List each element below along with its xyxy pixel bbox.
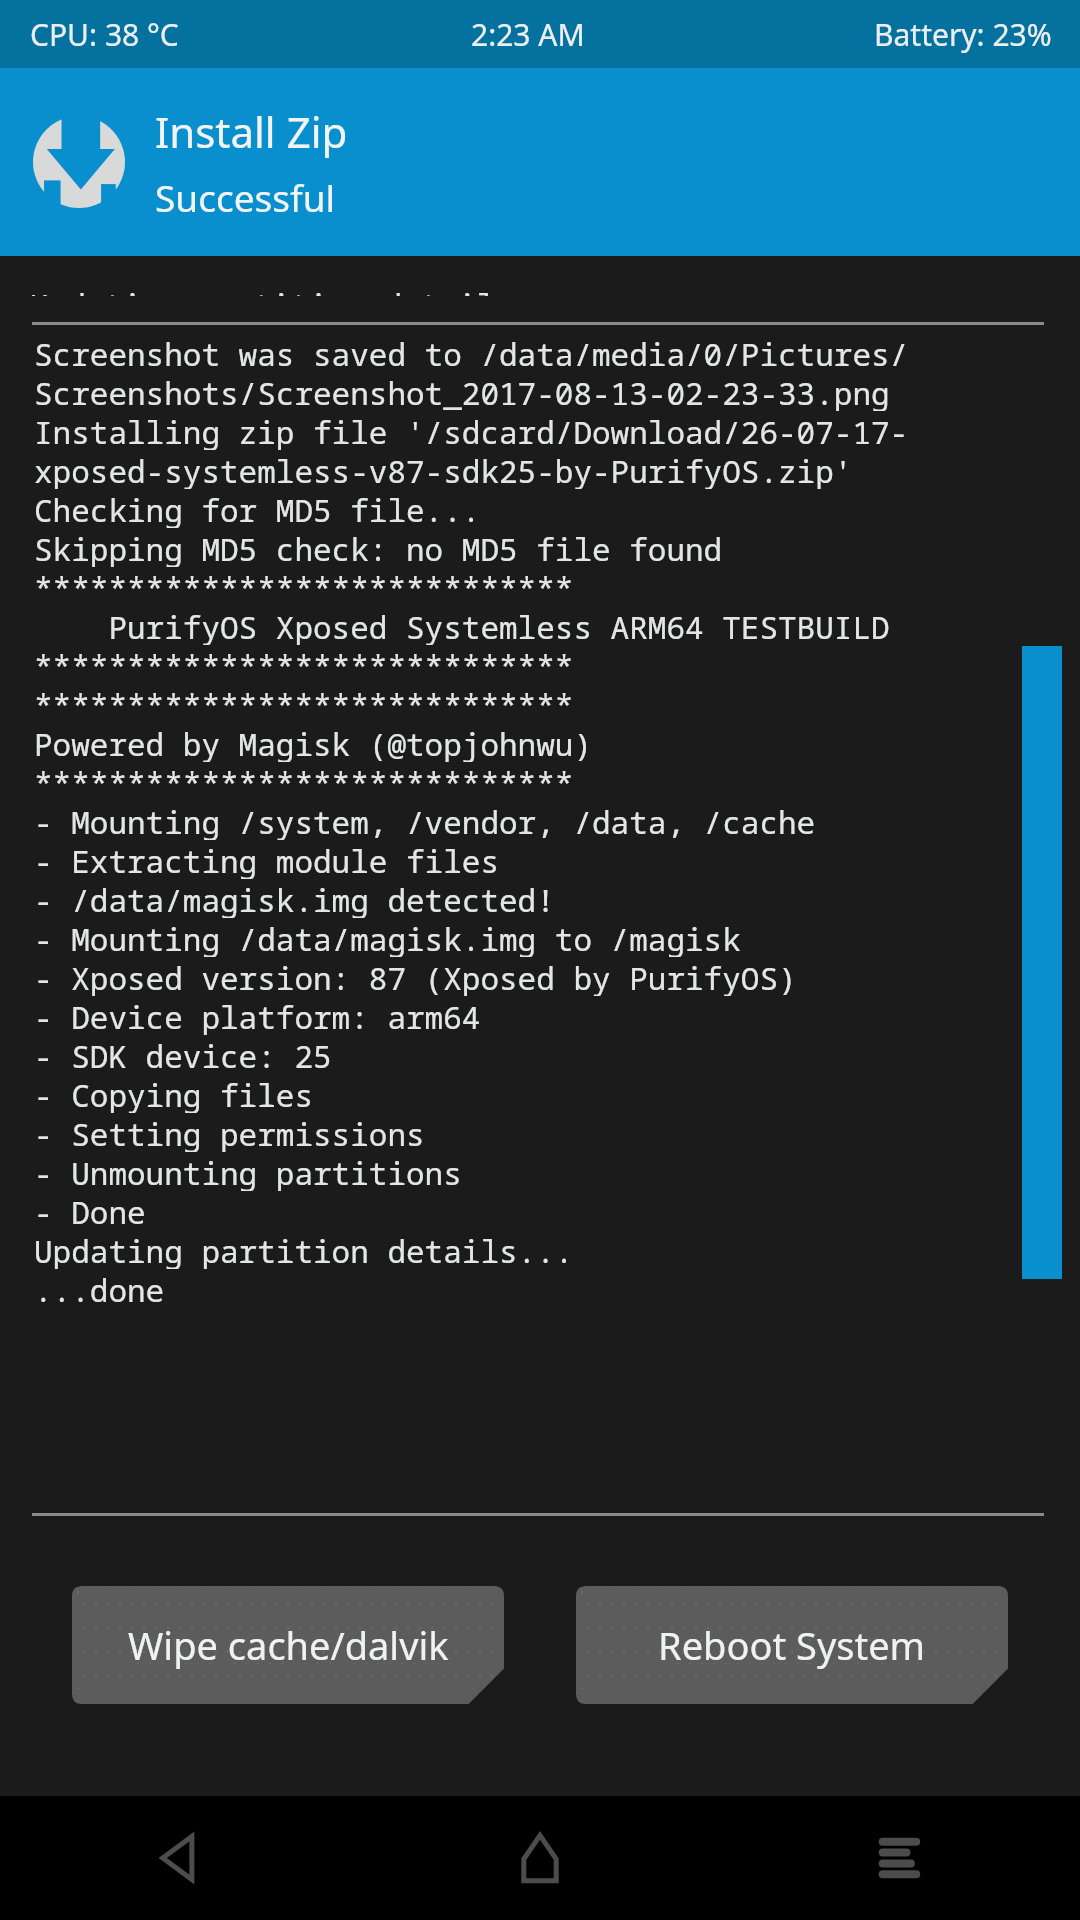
staticText: CPU: 38 °C [30,14,179,55]
button[interactable]: Reboot System [576,1586,1008,1704]
staticText: - Xposed version: 87 (Xposed by PurifyOS… [34,957,797,996]
button[interactable]: Wipe cache/dalvik [72,1586,504,1704]
staticText: Battery: 23% [874,14,1052,55]
staticText: - Device platform: arm64 [34,996,481,1035]
staticText: Checking for MD5 file... [34,489,481,528]
staticText: - Unmounting partitions [34,1152,462,1191]
staticText: - /data/magisk.img detected! [34,879,555,918]
staticText: Successful [155,172,336,222]
staticText: - Extracting module files [34,840,499,879]
staticText: ...done [34,1269,165,1308]
staticText: - Done [34,1191,146,1230]
staticText: Screenshots/Screenshot_2017-08-13-02-23-… [34,372,890,411]
staticText: Powered by Magisk (@topjohnwu) [34,723,592,762]
button[interactable]: Menu [720,1796,1080,1920]
button[interactable]: Home [360,1796,720,1920]
staticText: Updating partition details...png [30,284,626,296]
staticText: Updating partition details... [34,1230,574,1269]
button[interactable]: Back [0,1796,360,1920]
staticText: - Copying files [34,1074,313,1113]
staticText: ***************************** [34,567,574,606]
staticText: ***************************** [34,645,574,684]
staticText: Reboot System [658,1619,926,1671]
staticText: PurifyOS Xposed Systemless ARM64 TESTBUI… [34,606,890,645]
staticText: ***************************** [34,684,574,723]
staticText: Install Zip [155,103,348,160]
staticText: Screenshot was saved to /data/media/0/Pi… [34,333,909,372]
staticText: Skipping MD5 check: no MD5 file found [34,528,723,567]
staticText: - Mounting /data/magisk.img to /magisk [34,918,741,957]
staticText: - Mounting /system, /vendor, /data, /cac… [34,801,816,840]
staticText: 2:23 AM [471,14,585,55]
staticText: - SDK device: 25 [34,1035,332,1074]
staticText: xposed-systemless-v87-sdk25-by-PurifyOS.… [34,450,853,489]
staticText: Installing zip file '/sdcard/Download/26… [34,411,909,450]
staticText: Wipe cache/dalvik [128,1619,449,1671]
staticText: ***************************** [34,762,574,801]
button[interactable]: Install Zip [0,68,1080,256]
staticText: - Setting permissions [34,1113,425,1152]
